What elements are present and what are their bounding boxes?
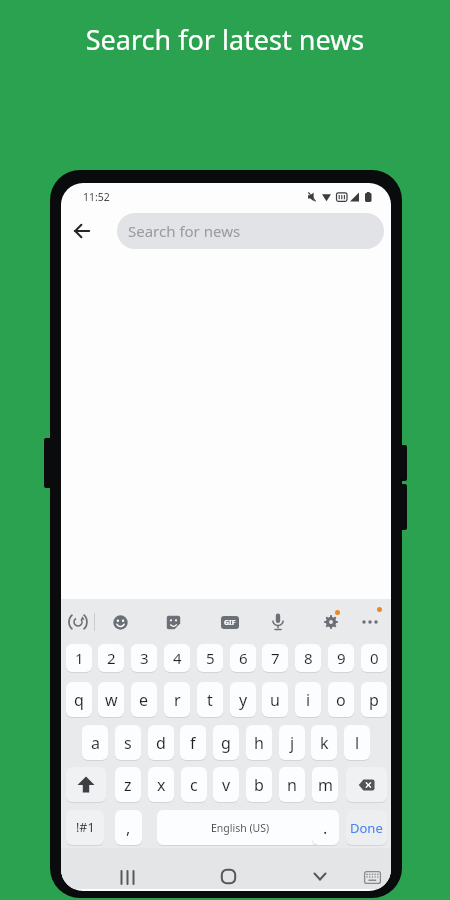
button[interactable]: [306, 866, 334, 886]
button[interactable]: Done: [346, 810, 387, 845]
button[interactable]: 0: [361, 644, 387, 672]
staticText: 1: [75, 648, 84, 668]
staticText: r: [174, 689, 181, 711]
staticText: b: [254, 774, 264, 796]
staticText: c: [190, 774, 198, 796]
staticText: e: [139, 689, 149, 711]
button[interactable]: 2: [98, 644, 124, 672]
button[interactable]: [214, 864, 242, 888]
staticText: i: [306, 689, 311, 711]
staticText: v: [222, 774, 231, 796]
button[interactable]: z: [115, 767, 141, 802]
staticText: a: [91, 732, 100, 754]
staticText: z: [124, 774, 132, 796]
staticText: GIF: [224, 618, 236, 628]
button[interactable]: k: [311, 725, 337, 760]
staticText: s: [124, 732, 132, 754]
button[interactable]: d: [148, 725, 174, 760]
button[interactable]: f: [180, 725, 206, 760]
staticText: n: [287, 774, 297, 796]
button[interactable]: GIF: [221, 616, 239, 629]
button[interactable]: v: [213, 767, 239, 802]
staticText: .: [323, 817, 328, 839]
button[interactable]: q: [66, 682, 92, 717]
button[interactable]: 1: [66, 644, 92, 672]
button[interactable]: Search for news: [117, 213, 384, 249]
staticText: f: [190, 732, 196, 754]
staticText: k: [320, 732, 329, 754]
button[interactable]: [267, 610, 289, 634]
staticText: j: [290, 732, 295, 754]
button[interactable]: [360, 868, 384, 886]
staticText: x: [157, 774, 166, 796]
staticText: d: [156, 732, 166, 754]
staticText: 0: [370, 648, 379, 668]
button[interactable]: 9: [328, 644, 354, 672]
button[interactable]: 6: [230, 644, 256, 672]
staticText: m: [318, 774, 333, 796]
button[interactable]: [346, 767, 387, 802]
button[interactable]: t: [197, 682, 223, 717]
staticText: t: [207, 689, 213, 711]
staticText: q: [74, 689, 84, 711]
staticText: !#1: [76, 819, 95, 836]
button[interactable]: [66, 767, 106, 802]
staticText: 9: [337, 648, 346, 668]
staticText: y: [239, 689, 248, 711]
staticText: 7: [271, 648, 280, 668]
button[interactable]: h: [246, 725, 272, 760]
staticText: 11:52: [83, 190, 110, 204]
button[interactable]: b: [246, 767, 272, 802]
button[interactable]: [113, 866, 141, 888]
button[interactable]: [66, 611, 90, 633]
button[interactable]: n: [279, 767, 305, 802]
staticText: 2: [107, 648, 116, 668]
staticText: 5: [206, 648, 215, 668]
button[interactable]: .: [312, 810, 339, 845]
button[interactable]: [162, 611, 184, 633]
staticText: Search for latest news: [0, 21, 450, 58]
staticText: 3: [140, 648, 149, 668]
button[interactable]: [358, 613, 382, 631]
staticText: p: [369, 689, 379, 711]
button[interactable]: r: [164, 682, 190, 717]
button[interactable]: j: [279, 725, 305, 760]
button[interactable]: s: [115, 725, 141, 760]
button[interactable]: l: [344, 725, 370, 760]
button[interactable]: [67, 217, 97, 245]
button[interactable]: x: [148, 767, 174, 802]
button[interactable]: o: [328, 682, 354, 717]
button[interactable]: c: [181, 767, 207, 802]
button[interactable]: e: [131, 682, 157, 717]
button[interactable]: 8: [295, 644, 321, 672]
button[interactable]: [320, 611, 342, 633]
button[interactable]: [109, 611, 131, 633]
staticText: l: [355, 732, 360, 754]
button[interactable]: g: [213, 725, 239, 760]
staticText: ,: [126, 817, 131, 839]
staticText: 4: [173, 648, 182, 668]
button[interactable]: w: [98, 682, 124, 717]
staticText: 8: [304, 648, 313, 668]
button[interactable]: ,: [115, 810, 142, 845]
button[interactable]: English (US): [157, 810, 323, 845]
button[interactable]: a: [82, 725, 108, 760]
button[interactable]: 7: [262, 644, 288, 672]
button[interactable]: 5: [197, 644, 223, 672]
button[interactable]: y: [230, 682, 256, 717]
staticText: English (US): [211, 821, 270, 835]
button[interactable]: p: [361, 682, 387, 717]
button[interactable]: 4: [164, 644, 190, 672]
staticText: Done: [350, 819, 383, 837]
staticText: w: [105, 689, 118, 711]
button[interactable]: m: [312, 767, 338, 802]
staticText: h: [254, 732, 264, 754]
staticText: g: [221, 732, 231, 754]
staticText: o: [336, 689, 346, 711]
button[interactable]: 3: [131, 644, 157, 672]
staticText: Search for news: [128, 221, 241, 241]
button[interactable]: !#1: [66, 810, 104, 845]
button[interactable]: u: [262, 682, 288, 717]
staticText: 6: [239, 648, 248, 668]
button[interactable]: i: [295, 682, 321, 717]
